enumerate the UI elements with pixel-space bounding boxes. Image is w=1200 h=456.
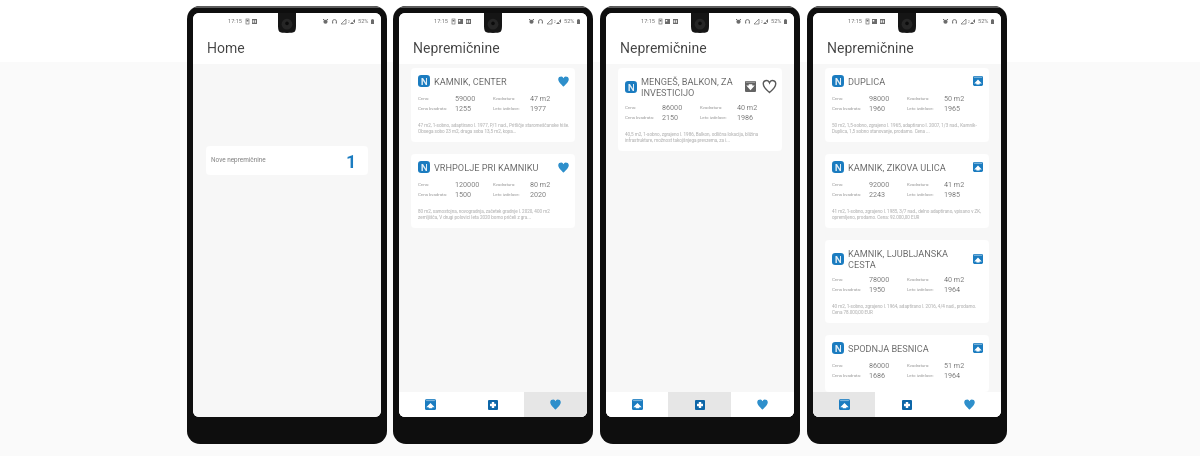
staticText: KAMNIK, CENTER [434,76,554,87]
staticText: Nepremičnine [620,40,707,56]
staticText: Cena kvadrata: [418,192,447,197]
staticText: 40,5 m2, 1-sobno, zgrajeno l. 1986, Balk… [625,132,759,137]
staticText: Leto izdelave: [700,115,727,120]
staticText: KAMNIK, LJUBLJANSKA CESTA [848,248,969,270]
staticText: 59000 [455,94,476,102]
staticText: 1965 [944,104,961,112]
staticText: Cena kvadrata: [625,115,654,120]
button[interactable]: Home [813,392,875,417]
staticText: 86000 [869,361,890,369]
staticText: 40 m2 [737,103,758,111]
button[interactable]: N [411,68,575,142]
staticText: Kvadratura: [493,182,516,187]
staticText: 40 m2, 1-sobno, zgrajeno l. 1964, adapti… [832,304,977,309]
staticText: zemljišča, V drugi polovici leta 2020 bo… [418,215,531,220]
staticText: 2 [761,20,763,24]
staticText: 80 m2, samostojna, novogradnja, začetek … [418,209,550,214]
staticText: 78000 [869,275,890,283]
staticText: SPODNJA BESNICA [848,343,969,354]
button[interactable]: N [618,68,782,151]
staticText: 2020 [530,190,547,198]
staticText: Leto izdelave: [493,192,520,197]
staticText: 86000 [662,103,683,111]
button[interactable]: Save listing [745,81,756,92]
staticText: Cena: [832,277,844,282]
staticText: 17:15 [228,18,242,25]
staticText: 40 m2 [944,275,965,283]
button[interactable]: N [825,68,989,142]
staticText: 98000 [869,94,890,102]
staticText: DUPLICA [848,76,969,87]
staticText: Cena: [418,182,430,187]
staticText: 120000 [455,180,480,188]
staticText: N [835,76,842,87]
button[interactable]: Add [668,392,731,417]
staticText: Home [207,40,245,56]
staticText: Kvadratura: [493,96,516,101]
button[interactable]: Add [461,392,524,417]
staticText: Nove nepremičnine [211,156,266,164]
staticText: Leto izdelave: [907,192,934,197]
button[interactable]: Favorites [731,392,794,417]
staticText: Cena: [625,105,637,110]
staticText: Nepremičnine [413,40,500,56]
button[interactable]: Open listing [972,342,983,353]
staticText: N [628,82,635,93]
button[interactable]: Add [875,392,938,417]
button[interactable]: N [411,154,575,228]
staticText: Kvadratura: [907,96,930,101]
staticText: 2150 [662,113,679,121]
staticText: Nepremičnine [827,40,914,56]
button[interactable]: Favorite [557,161,569,173]
button[interactable]: Open listing [972,75,983,86]
staticText: Duplica, 1,5 sobno stanovanje, prodamo. … [832,129,930,134]
staticText: opremljeno, prodamo. Cena: 92.000,00 EUR [832,215,920,220]
staticText: Cena kvadrata: [418,106,447,111]
staticText: 1960 [869,104,886,112]
staticText: Cena kvadrata: [832,106,861,111]
staticText: Obsega sobo 23 m2, druga soba 13,5 m2, k… [418,129,517,134]
button[interactable]: Favorites [524,392,587,417]
button[interactable]: Open listing [972,161,983,172]
button[interactable]: Favorite [557,75,569,87]
staticText: Leto izdelave: [907,106,934,111]
staticText: Cena: [418,96,430,101]
button[interactable]: Home [606,392,668,417]
staticText: 1686 [869,371,886,379]
button[interactable]: Nove nepremičnine [206,146,368,175]
staticText: 17:15 [848,18,862,25]
staticText: 50 m2 [944,94,965,102]
staticText: Kvadratura: [907,277,930,282]
staticText: 52% [771,18,782,25]
staticText: MENGEŠ, BALKON, ZA INVESTICIJO [641,76,742,98]
staticText: 92000 [869,180,890,188]
staticText: VRHPOLJE PRI KAMNIKU [434,162,554,173]
staticText: N [835,162,842,173]
staticText: infrastrukture, možnost takojšnjega prev… [625,138,730,143]
button[interactable]: Favorites [938,392,1001,417]
staticText: 1950 [869,285,886,293]
staticText: N [421,76,428,87]
staticText: Cena kvadrata: [832,373,861,378]
staticText: N [835,254,842,265]
button[interactable]: N [825,154,989,228]
button[interactable]: N [825,335,989,392]
staticText: 1500 [455,190,472,198]
button[interactable]: Favorite [763,80,776,93]
staticText: 51 m2 [944,361,965,369]
button[interactable]: Home [399,392,461,417]
staticText: 2 [968,20,970,24]
button[interactable]: Open listing [972,253,983,264]
staticText: 50 m2, 1,5-sobno, zgrajeno l. 1965, adap… [832,123,977,128]
staticText: 41 m2, 1-sobno, zgrajeno l. 1985, 3/7 na… [832,209,981,214]
staticText: 1977 [530,104,547,112]
staticText: 17:15 [641,18,655,25]
staticText: Leto izdelave: [907,287,934,292]
button[interactable]: N [825,240,989,323]
staticText: 52% [978,18,989,25]
staticText: 80 m2 [530,180,551,188]
staticText: 1986 [737,113,754,121]
staticText: 1255 [455,104,472,112]
staticText: 41 m2 [944,180,965,188]
staticText: Cena: [832,96,844,101]
